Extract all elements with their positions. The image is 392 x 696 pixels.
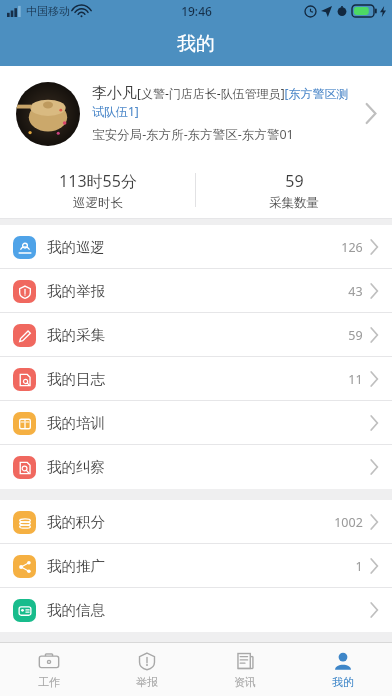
staticText: 资讯 [234,675,256,689]
staticText: 1002 [334,514,363,531]
button[interactable]: 我的信息 [0,588,392,632]
button[interactable]: 工作 [0,643,98,696]
staticText: 宝安分局-东方所-东方警区-东方警01 [92,126,294,143]
button[interactable]: 我的推广 [0,544,392,588]
staticText: 59 [348,327,363,344]
staticText: 43 [348,283,363,300]
staticText: 我的 [177,32,215,56]
button[interactable]: 我的巡逻 [0,225,392,269]
staticText: 我的纠察 [47,458,105,476]
button[interactable]: 李小凡[义警-门店店长-队伍管理员][东方警区测试队伍1] [0,66,392,161]
staticText: 我的采集 [47,326,105,344]
staticText: 19:46 [181,3,212,19]
staticText: 我的培训 [47,414,105,432]
staticText: 我的信息 [47,601,105,619]
staticText: 我的巡逻 [47,238,105,256]
staticText: 126 [341,239,363,256]
button[interactable]: 我的积分 [0,500,392,544]
staticText: 我的举报 [47,282,105,300]
button[interactable]: 59 [196,161,392,219]
button[interactable]: 113时55分 [0,161,195,219]
button[interactable]: 我的培训 [0,401,392,445]
staticText: 巡逻时长 [73,195,123,211]
staticText: 工作 [38,675,60,689]
button[interactable]: 我的日志 [0,357,392,401]
staticText: 11 [348,371,363,388]
button[interactable]: 我的举报 [0,269,392,313]
staticText: 59 [285,170,304,192]
staticText: 采集数量 [269,195,319,211]
button[interactable]: 举报 [98,643,196,696]
button[interactable]: 我的 [294,643,392,696]
staticText: 113时55分 [59,170,137,192]
staticText: 李小凡[义警-门店店长-队伍管理员][东方警区测试队伍1] [92,84,359,120]
button[interactable]: 我的采集 [0,313,392,357]
staticText: 我的日志 [47,370,105,388]
button[interactable]: 资讯 [196,643,294,696]
staticText: 举报 [136,675,158,689]
staticText: 我的积分 [47,513,105,531]
staticText: 我的 [332,675,354,689]
staticText: 我的推广 [47,557,105,575]
staticText: 中国移动 [26,4,70,18]
staticText: 1 [355,558,363,575]
button[interactable]: 我的纠察 [0,445,392,489]
